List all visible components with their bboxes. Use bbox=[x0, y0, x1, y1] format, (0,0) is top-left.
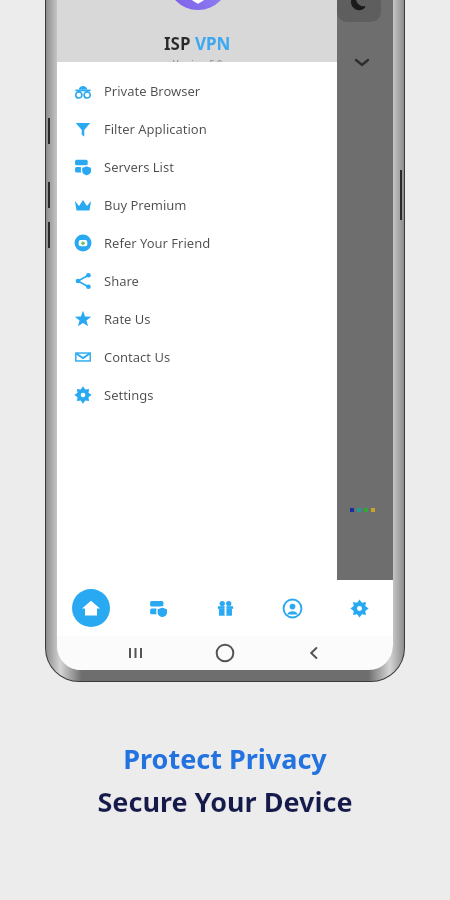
staticText: Buy Premium bbox=[104, 196, 187, 214]
button[interactable]: Share bbox=[57, 262, 337, 300]
staticText: Contact Us bbox=[104, 348, 171, 366]
staticText: Settings bbox=[104, 386, 154, 404]
button[interactable]: Account bbox=[259, 580, 326, 636]
staticText: Filter Application bbox=[104, 120, 207, 138]
button[interactable]: Refer Your Friend bbox=[57, 224, 337, 262]
staticText: Servers List bbox=[104, 158, 174, 176]
staticText: Protect Privacy bbox=[123, 740, 327, 777]
staticText: ISP VPN bbox=[164, 32, 231, 55]
button[interactable]: Settings bbox=[57, 376, 337, 414]
staticText: Version: 5.0 bbox=[173, 57, 223, 62]
staticText: Private Browser bbox=[104, 82, 201, 100]
button[interactable]: Servers bbox=[125, 580, 192, 636]
button[interactable]: Servers List bbox=[57, 148, 337, 186]
staticText: Secure Your Device bbox=[97, 783, 353, 820]
staticText: Share bbox=[104, 272, 139, 290]
button[interactable]: Contact Us bbox=[57, 338, 337, 376]
button[interactable]: Rate Us bbox=[57, 300, 337, 338]
button[interactable]: Filter Application bbox=[57, 110, 337, 148]
button[interactable]: Home bbox=[57, 580, 125, 636]
staticText: Rate Us bbox=[104, 310, 151, 328]
staticText: Refer Your Friend bbox=[104, 234, 211, 252]
button[interactable]: Private Browser bbox=[57, 72, 337, 110]
button[interactable]: Settings bbox=[326, 580, 393, 636]
button[interactable]: Rewards bbox=[192, 580, 259, 636]
button[interactable]: Buy Premium bbox=[57, 186, 337, 224]
